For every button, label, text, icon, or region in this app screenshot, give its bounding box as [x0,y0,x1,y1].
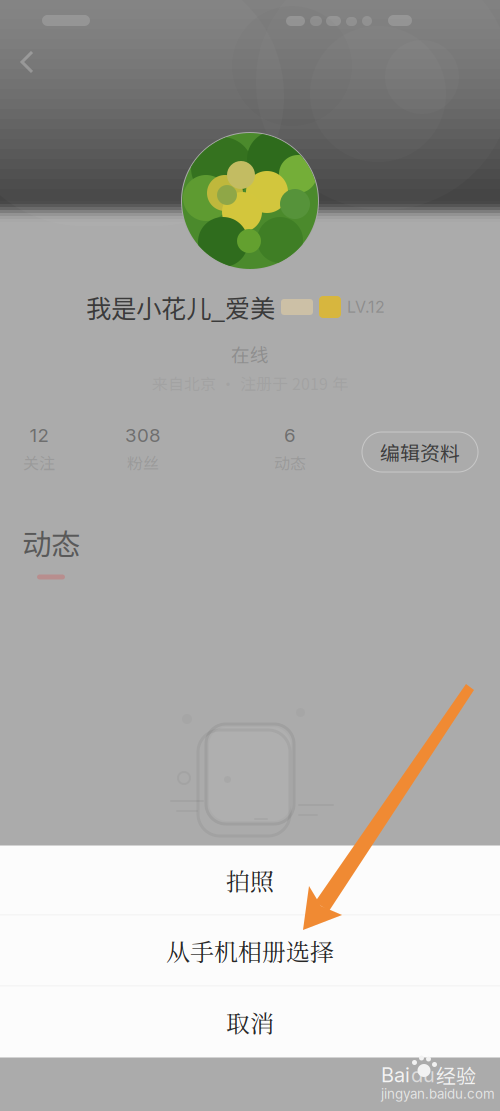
staticText: 经验 [436,1060,476,1089]
button[interactable]: 取消 [0,986,500,1057]
button[interactable]: 12 [1,424,77,482]
button[interactable]: 编辑资料 [362,432,478,472]
staticText: 6 [284,424,296,447]
button[interactable]: 从手机相册选择 [0,915,500,985]
staticText: 从手机相册选择 [166,933,334,968]
staticText: 粉丝 [127,451,159,474]
button[interactable]: 动态 [11,521,91,583]
button[interactable]: 6 [252,424,328,482]
staticText: jingyan.baidu.com [381,1086,495,1102]
button[interactable]: 返回 [6,40,50,84]
staticText: 12 [29,424,48,447]
staticText: 编辑资料 [380,437,460,466]
staticText: 关注 [23,451,55,474]
staticText: Bai [381,1063,410,1087]
staticText: 拍照 [226,863,274,897]
staticText: 动态 [274,451,306,474]
staticText: LV.12 [347,297,385,317]
staticText: 动态 [22,521,80,563]
button[interactable]: 308 [105,424,181,482]
staticText: 308 [125,424,161,447]
staticText: 在线 [231,340,269,367]
staticText: 取消 [226,1005,274,1039]
staticText: du [411,1063,435,1087]
staticText: 我是小花儿_爱美 [86,289,275,325]
button[interactable]: 拍照 [0,845,500,914]
